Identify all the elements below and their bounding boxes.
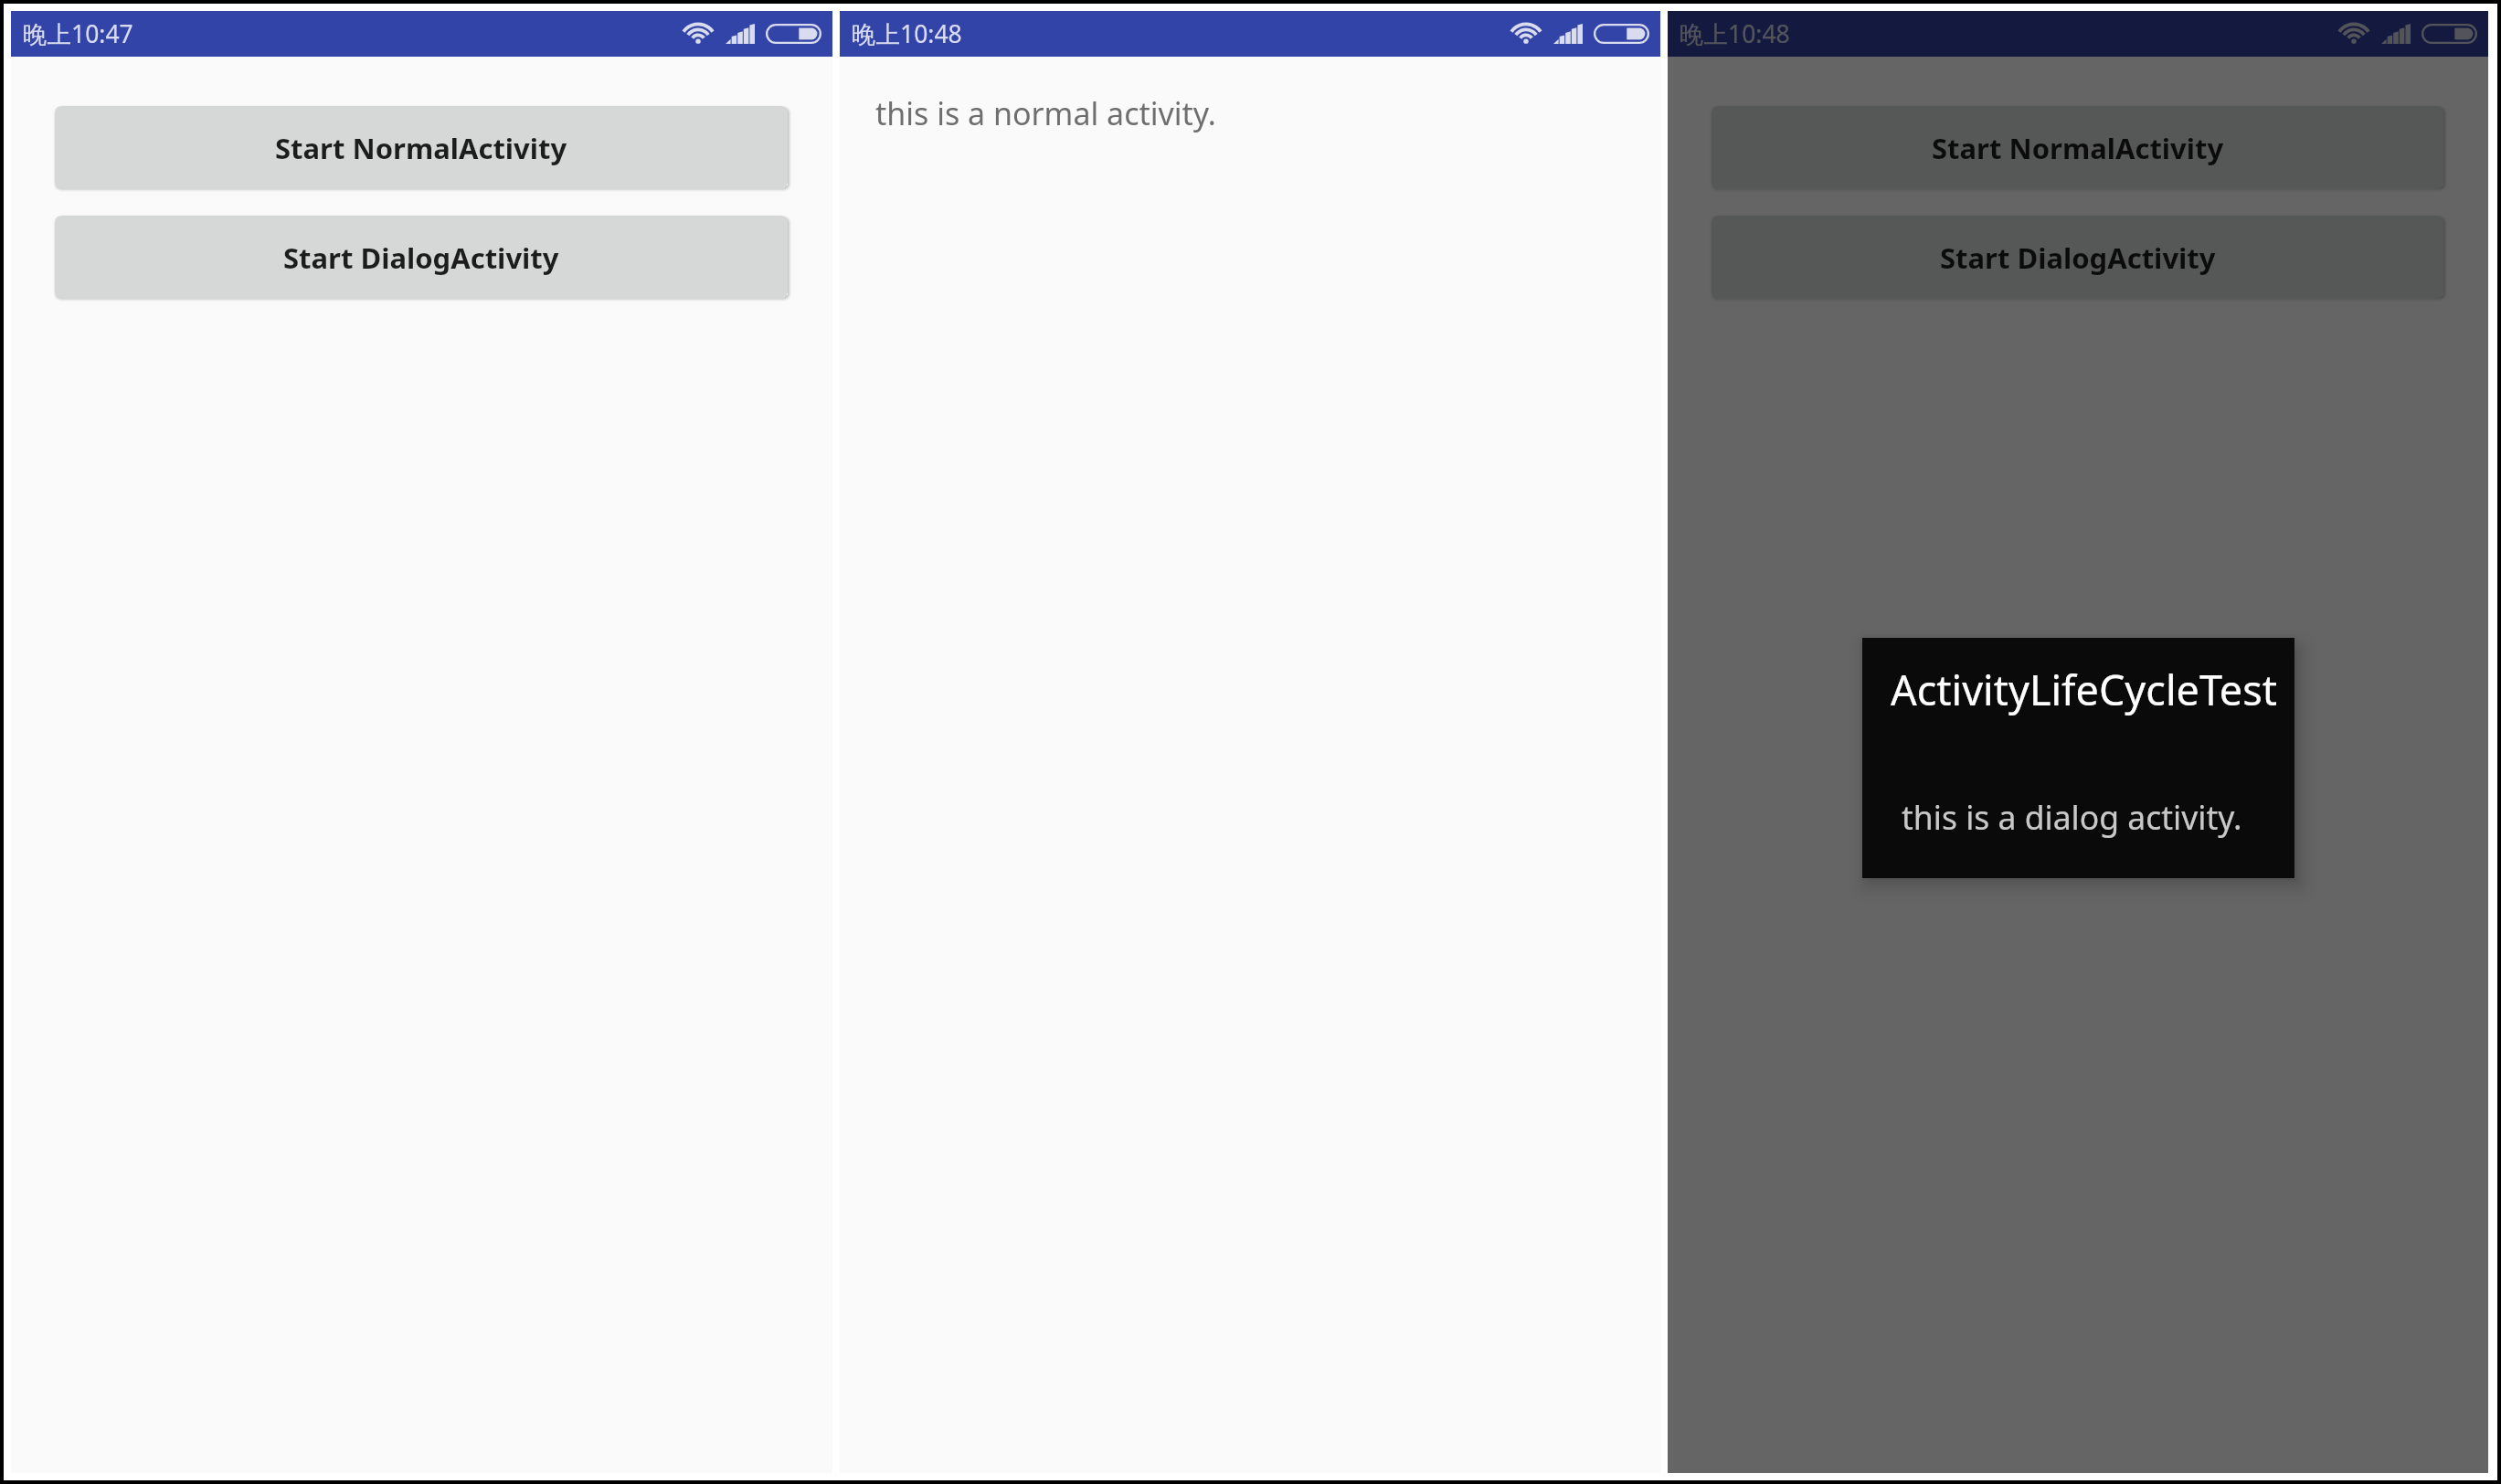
other: Wi-Fi signal	[1510, 20, 1542, 44]
staticText: 晚上10:48	[852, 17, 962, 50]
staticText: ActivityLifeCycleTest	[1891, 662, 2277, 717]
button[interactable]: Start NormalActivity	[1711, 106, 2443, 189]
other: Battery level	[766, 24, 821, 44]
other: Battery level	[2422, 24, 2477, 44]
staticText: 晚上10:47	[23, 17, 133, 50]
staticText: 晚上10:48	[1680, 17, 1790, 50]
staticText: Start NormalActivity	[1932, 129, 2224, 167]
other: Battery level	[1594, 24, 1649, 44]
staticText: this is a normal activity.	[875, 92, 1216, 134]
button[interactable]: Start DialogActivity	[55, 216, 788, 299]
other: Mobile signal strength	[1553, 24, 1583, 44]
other: Mobile signal strength	[2381, 24, 2411, 44]
button[interactable]: ActivityLifeCycleTest	[1862, 638, 2294, 878]
staticText: Start DialogActivity	[283, 238, 559, 277]
staticText: Start DialogActivity	[1940, 238, 2216, 277]
other: Mobile signal strength	[726, 24, 755, 44]
button[interactable]: Dismiss dialog	[1668, 11, 2488, 1473]
button[interactable]: Start DialogActivity	[1711, 216, 2443, 299]
staticText: this is a dialog activity.	[1902, 795, 2242, 839]
other: Wi-Fi signal	[683, 20, 714, 44]
staticText: Start NormalActivity	[275, 129, 567, 167]
button[interactable]: Start NormalActivity	[55, 106, 788, 189]
other: Wi-Fi signal	[2338, 20, 2369, 44]
